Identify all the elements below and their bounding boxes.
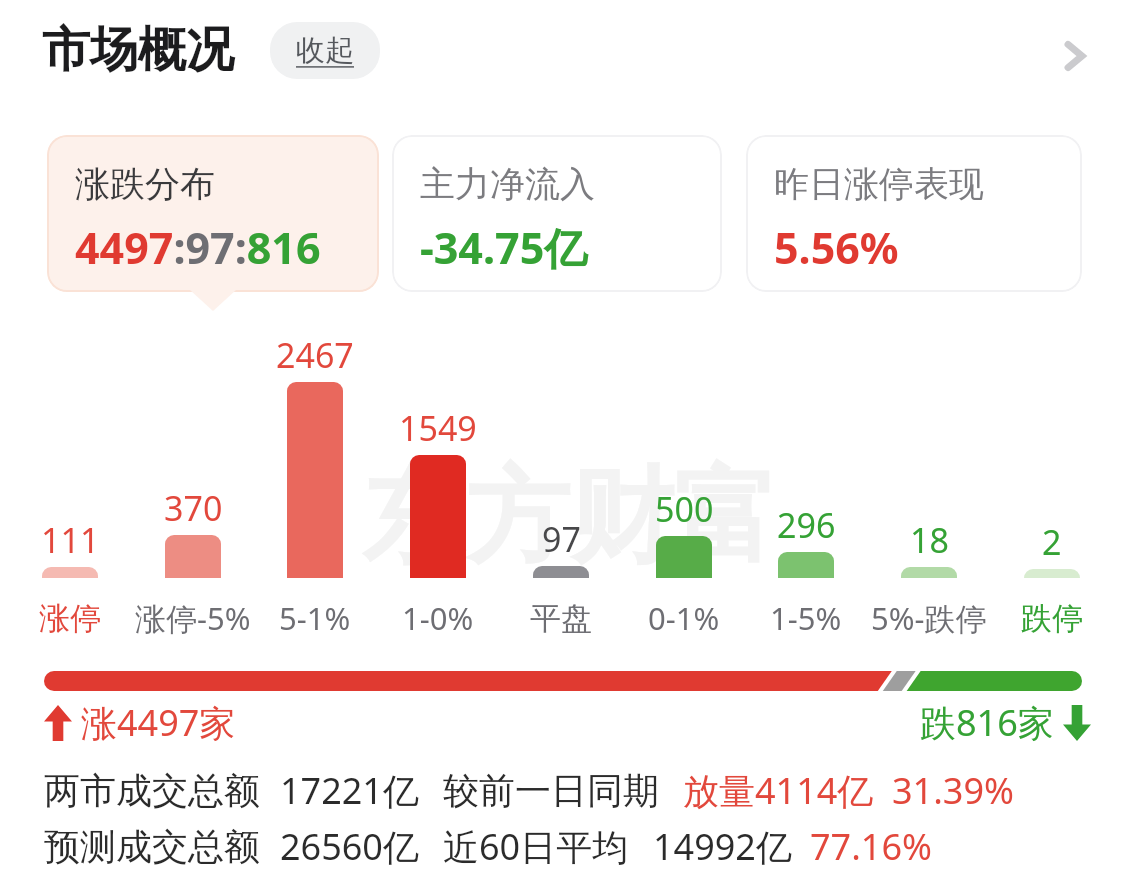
button[interactable]: 查看更多 — [1046, 27, 1104, 85]
staticText: 370 — [164, 485, 223, 531]
staticText: 0-1% — [648, 597, 720, 639]
staticText: 两市成交总额 — [44, 768, 260, 813]
staticText: 东方财富 — [362, 452, 778, 583]
staticText: 77.16% — [810, 822, 932, 871]
staticText: 296 — [777, 502, 836, 548]
staticText: 31.39% — [892, 766, 1014, 815]
staticText: 较前一日同期 — [443, 768, 659, 813]
staticText: 涨停 — [39, 599, 101, 638]
staticText: 1-0% — [402, 597, 474, 639]
button[interactable]: 主力净流入 — [392, 135, 722, 292]
staticText: 平盘 — [530, 599, 592, 638]
staticText: 5-1% — [279, 597, 351, 639]
staticText: 2467 — [276, 332, 354, 378]
staticText: 预测成交总额 — [44, 824, 260, 869]
staticText: 收起 — [296, 32, 354, 69]
staticText: 111 — [41, 517, 100, 563]
staticText: -34.75亿 — [420, 218, 588, 277]
staticText: 放量4114亿 — [683, 766, 874, 815]
staticText: 涨停-5% — [135, 597, 251, 639]
button[interactable]: 收起 — [270, 22, 380, 79]
staticText: 昨日涨停表现 — [774, 162, 984, 206]
button[interactable]: 昨日涨停表现 — [746, 135, 1082, 292]
staticText: 1-5% — [770, 597, 842, 639]
staticText: 跌停 — [1021, 599, 1083, 638]
staticText: 主力净流入 — [420, 162, 595, 206]
staticText: 涨4497家 — [81, 698, 236, 747]
staticText: 17221亿 — [280, 766, 419, 815]
staticText: 97 — [542, 516, 581, 562]
staticText: 近60日平均 — [443, 822, 629, 871]
button[interactable]: 涨跌分布 — [47, 135, 379, 292]
staticText: 跌816家 — [920, 698, 1054, 747]
staticText: 4497:97:816 — [75, 218, 321, 277]
staticText: 涨跌分布 — [75, 162, 215, 206]
staticText: 18 — [910, 517, 949, 563]
staticText: 2 — [1042, 519, 1062, 565]
staticText: 5%-跌停 — [871, 597, 987, 639]
staticText: 500 — [655, 486, 714, 532]
staticText: 26560亿 — [280, 822, 419, 871]
staticText: 5.56% — [774, 218, 899, 277]
staticText: 1549 — [399, 405, 477, 451]
staticText: 14992亿 — [653, 822, 792, 871]
staticText: 市场概况 — [42, 20, 234, 80]
